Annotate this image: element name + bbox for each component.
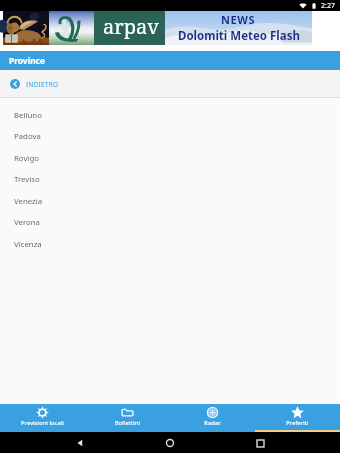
staticText: Padova xyxy=(14,131,41,142)
button[interactable]: Rovigo xyxy=(0,147,340,169)
staticText: Belluno xyxy=(14,110,42,121)
staticText: arpav xyxy=(103,13,159,40)
staticText: Radar xyxy=(204,419,221,427)
staticText: Previsioni locali xyxy=(21,419,64,427)
staticText: INDIETRO xyxy=(26,80,59,89)
button[interactable]: Treviso xyxy=(0,169,340,190)
button[interactable]: Verona xyxy=(0,212,340,233)
button[interactable]: Padova xyxy=(0,126,340,147)
button[interactable]: Home xyxy=(160,433,180,453)
button[interactable]: INDIETRO xyxy=(10,70,59,98)
staticText: NEWS xyxy=(221,12,256,27)
staticText: Preferiti xyxy=(286,419,309,427)
staticText: Verona xyxy=(14,217,40,228)
button[interactable]: Recents xyxy=(250,433,270,453)
button[interactable]: Preferiti xyxy=(255,404,340,432)
button[interactable]: Previsioni locali xyxy=(0,404,85,432)
staticText: Venezia xyxy=(14,196,43,207)
button[interactable]: Vicenza xyxy=(0,233,340,255)
staticText: Dolomiti Meteo Flash xyxy=(178,28,300,44)
button[interactable]: Bollettini xyxy=(85,404,170,432)
button[interactable]: Venezia xyxy=(0,190,340,212)
button[interactable]: Radar xyxy=(170,404,255,432)
staticText: Province xyxy=(9,55,45,66)
button[interactable]: Belluno xyxy=(0,104,340,126)
staticText: Rovigo xyxy=(14,153,39,164)
staticText: Vicenza xyxy=(14,239,42,250)
staticText: 2:27 xyxy=(321,1,335,11)
staticText: Bollettini xyxy=(115,419,140,427)
staticText: Treviso xyxy=(14,174,40,185)
button[interactable]: Back xyxy=(70,433,90,453)
